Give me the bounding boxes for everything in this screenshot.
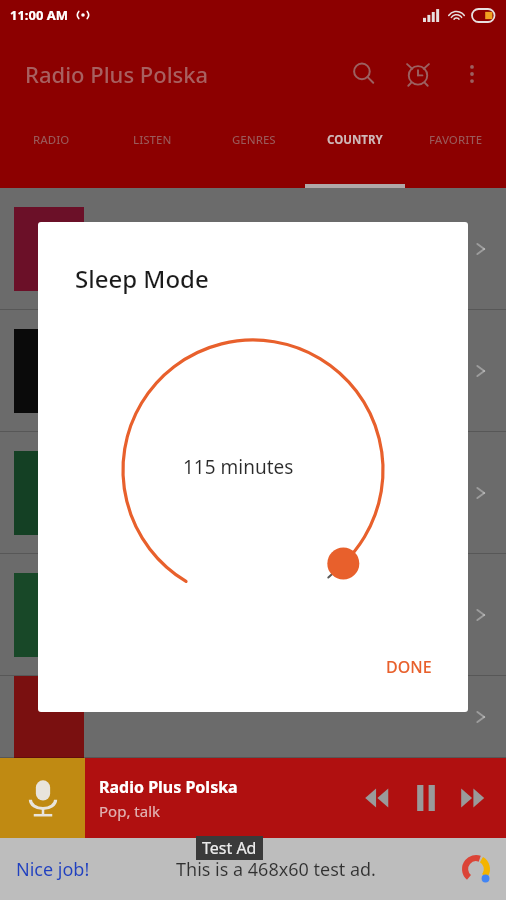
button[interactable]: Search xyxy=(344,54,384,94)
button[interactable]: DONE xyxy=(372,648,446,686)
button[interactable]: GENRES xyxy=(203,118,304,188)
button[interactable]: Pause xyxy=(402,774,450,822)
button[interactable]: Nice job! xyxy=(0,838,506,900)
button[interactable]: LISTEN xyxy=(102,118,203,188)
staticText: GENRES xyxy=(232,132,276,148)
staticText: Nice job! xyxy=(16,857,90,882)
staticText: Pop, talk xyxy=(99,801,161,821)
staticText: LISTEN xyxy=(133,132,172,148)
staticText: Test Ad xyxy=(202,837,257,859)
staticText: 115 minutes xyxy=(183,454,294,480)
staticText: DONE xyxy=(386,656,432,678)
staticText: This is a 468x60 test ad. xyxy=(176,857,376,882)
button[interactable]: COUNTRY xyxy=(304,118,405,188)
button[interactable]: FAVORITE xyxy=(405,118,506,188)
button[interactable]: Next xyxy=(450,774,498,822)
staticText: RADIO xyxy=(33,132,70,148)
button[interactable]: More options xyxy=(452,54,492,94)
button[interactable]: Previous xyxy=(354,774,402,822)
staticText: COUNTRY xyxy=(327,132,383,148)
staticText: Sleep Mode xyxy=(75,262,209,295)
staticText: Radio Plus Polska xyxy=(25,59,209,89)
button[interactable]: Sleep timer xyxy=(398,54,438,94)
staticText: 11:00 AM xyxy=(10,6,69,24)
staticText: Radio Plus Polska xyxy=(99,776,238,798)
button[interactable]: Station artwork xyxy=(0,758,85,838)
button[interactable]: RADIO xyxy=(0,118,102,188)
staticText: FAVORITE xyxy=(429,132,483,148)
